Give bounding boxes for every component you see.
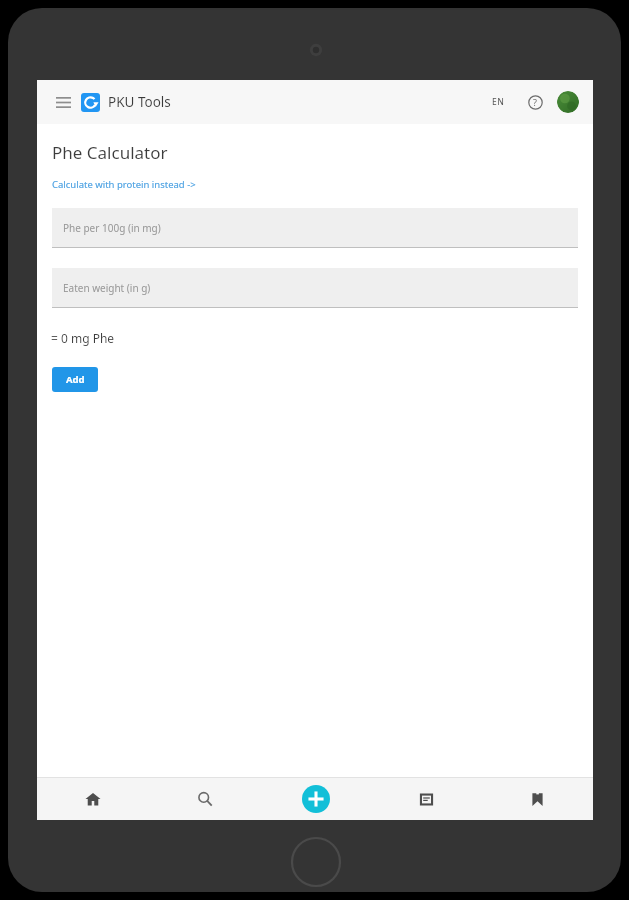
staticText: = 0 mg Phe [51,330,115,346]
button[interactable]: Add entry [260,778,371,820]
staticText: ? [533,96,537,108]
staticText: Add [66,373,85,386]
button[interactable]: Help [524,91,546,113]
staticText: Phe Calculator [52,141,168,164]
button[interactable]: Account [557,91,579,113]
button[interactable]: Home [37,778,149,820]
staticText: EN [492,96,505,108]
button[interactable]: PKU Tools logo [81,93,100,112]
staticText: Phe per 100g (in mg) [63,221,161,235]
staticText: Eaten weight (in g) [63,281,151,295]
button[interactable]: Saved [482,778,593,820]
button[interactable]: Diary [371,778,482,820]
button[interactable]: Eaten weight (in g) [52,268,578,308]
button[interactable]: Search [149,778,260,820]
staticText: PKU Tools [108,93,171,111]
button[interactable]: Phe per 100g (in mg) [52,208,578,248]
button[interactable]: EN [487,91,510,113]
button[interactable]: Add [52,367,98,392]
button[interactable]: Open navigation menu [51,90,75,114]
button[interactable]: Calculate with protein instead -> [52,178,196,191]
staticText: Calculate with protein instead -> [52,178,196,191]
